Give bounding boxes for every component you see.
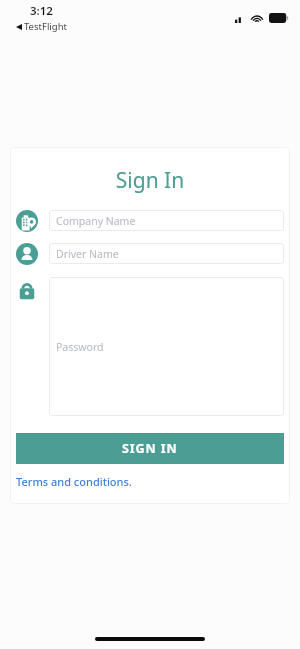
staticText: Terms and conditions. <box>16 474 132 489</box>
button[interactable]: Driver Name <box>49 243 284 264</box>
button[interactable]: Company <box>16 210 38 232</box>
staticText: 3:12 <box>30 3 53 19</box>
staticText: Password <box>56 340 104 354</box>
staticText: Company Name <box>56 214 136 228</box>
button[interactable]: Driver <box>16 243 38 265</box>
button[interactable]: Password <box>49 277 284 416</box>
staticText: Driver Name <box>56 247 119 261</box>
button[interactable]: SIGN IN <box>16 433 284 464</box>
button[interactable]: Password <box>16 279 38 301</box>
button[interactable]: Company Name <box>49 210 284 231</box>
staticText: SIGN IN <box>122 440 178 457</box>
button[interactable]: Terms and conditions. <box>16 474 132 489</box>
staticText: Sign In <box>10 166 290 195</box>
staticText: TestFlight <box>24 20 67 33</box>
